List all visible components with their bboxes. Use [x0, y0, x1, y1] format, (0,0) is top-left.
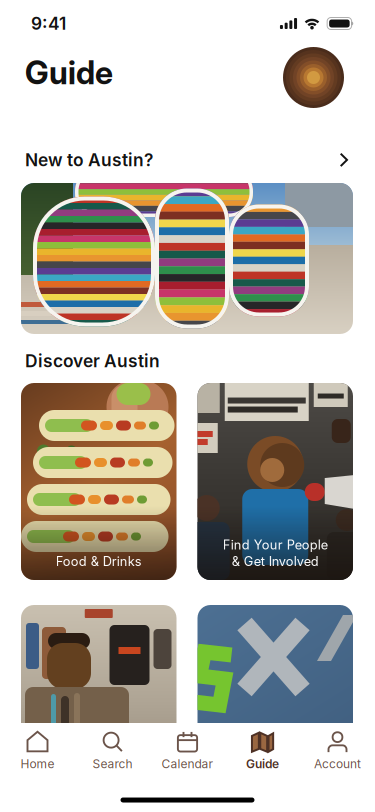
- button[interactable]: New to Austin?: [0, 146, 375, 174]
- button[interactable]: Food & Drinks: [21, 383, 176, 580]
- staticText: Guide: [246, 757, 279, 771]
- button[interactable]: Shopping: [21, 605, 176, 802]
- staticText: Guide: [25, 53, 113, 92]
- staticText: Account: [314, 757, 361, 771]
- staticText: & Get Involved: [232, 553, 319, 569]
- button[interactable]: Calendar: [150, 729, 225, 773]
- staticText: Home: [20, 757, 54, 771]
- staticText: 9:41: [31, 13, 66, 34]
- staticText: Find Your People: [223, 537, 328, 552]
- staticText: Discover Austin: [25, 350, 160, 371]
- staticText: Calendar: [161, 757, 213, 771]
- button[interactable]: Home: [0, 729, 75, 773]
- staticText: New to Austin?: [25, 149, 153, 170]
- button[interactable]: Profile: [283, 47, 344, 108]
- button[interactable]: Guide: [225, 729, 300, 773]
- button[interactable]: Find Your People & Get Involved: [197, 383, 353, 580]
- staticText: Food & Drinks: [56, 553, 142, 569]
- button[interactable]: SXSW: [197, 605, 353, 802]
- button[interactable]: Search: [75, 729, 150, 773]
- button[interactable]: Account: [300, 729, 375, 773]
- staticText: Search: [92, 757, 132, 771]
